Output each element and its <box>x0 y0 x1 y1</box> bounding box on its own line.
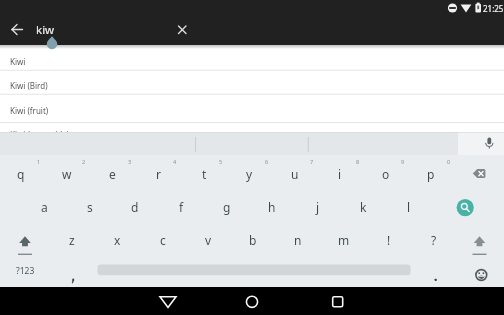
button[interactable] <box>458 132 504 155</box>
staticText: Kiwi (fruit) <box>10 105 49 116</box>
staticText: 21:25 <box>483 3 504 14</box>
staticText: 9 <box>401 158 405 165</box>
button[interactable]: ? <box>412 221 456 254</box>
staticText: 5 <box>219 158 223 165</box>
staticText: 7 <box>310 158 314 165</box>
staticText: y <box>246 166 253 182</box>
staticText: ?123 <box>16 265 35 277</box>
button[interactable]: l <box>387 188 431 221</box>
staticText: o <box>382 166 390 182</box>
button[interactable]: x <box>95 221 139 254</box>
button[interactable]: c <box>141 221 185 254</box>
staticText: w <box>62 166 72 182</box>
staticText: c <box>160 232 166 248</box>
button[interactable]: a <box>22 188 66 221</box>
button[interactable]: g <box>205 188 249 221</box>
button[interactable] <box>224 287 280 315</box>
staticText: b <box>249 232 257 248</box>
button[interactable]: w <box>45 155 89 188</box>
staticText: 4 <box>173 158 177 165</box>
button[interactable] <box>0 70 504 94</box>
button[interactable]: q <box>0 155 43 188</box>
staticText: r <box>156 166 161 182</box>
button[interactable]: f <box>159 188 203 221</box>
staticText: p <box>427 166 435 182</box>
button[interactable]: r <box>136 155 180 188</box>
staticText: 6 <box>265 158 269 165</box>
staticText: k <box>360 199 367 215</box>
staticText: m <box>338 232 350 248</box>
staticText: e <box>109 166 116 182</box>
button[interactable] <box>96 254 412 287</box>
button[interactable] <box>0 94 504 122</box>
staticText: ? <box>431 232 437 248</box>
button[interactable]: z <box>50 221 94 254</box>
staticText: i <box>338 166 342 182</box>
staticText: 2 <box>82 158 86 165</box>
staticText: a <box>41 199 48 215</box>
staticText: v <box>205 232 212 248</box>
staticText: 0 <box>447 158 451 165</box>
button[interactable] <box>456 221 502 254</box>
button[interactable]: t <box>182 155 226 188</box>
staticText: n <box>294 232 302 248</box>
button[interactable]: o <box>364 155 408 188</box>
button[interactable] <box>5 17 31 43</box>
button[interactable]: b <box>231 221 275 254</box>
button[interactable]: e <box>90 155 134 188</box>
staticText: z <box>69 232 75 248</box>
button[interactable]: y <box>227 155 271 188</box>
button[interactable]: p <box>409 155 453 188</box>
staticText: u <box>291 166 299 182</box>
button[interactable]: ! <box>367 221 411 254</box>
staticText: t <box>202 166 207 182</box>
staticText: l <box>407 199 411 215</box>
button[interactable]: ?123 <box>2 254 48 287</box>
staticText: kiw <box>36 22 55 38</box>
staticText: g <box>223 199 231 215</box>
button[interactable] <box>2 221 48 254</box>
button[interactable]: v <box>186 221 230 254</box>
button[interactable]: m <box>322 221 366 254</box>
button[interactable]: u <box>273 155 317 188</box>
staticText: x <box>114 232 121 248</box>
staticText: 1 <box>37 158 41 165</box>
staticText: Kiwi (vegetable) <box>10 129 70 132</box>
button[interactable] <box>48 254 92 287</box>
staticText: f <box>179 199 184 215</box>
button[interactable]: i <box>318 155 362 188</box>
button[interactable] <box>140 287 196 315</box>
button[interactable]: h <box>250 188 294 221</box>
button[interactable]: kiw <box>0 14 504 45</box>
button[interactable] <box>310 287 366 315</box>
button[interactable]: d <box>113 188 157 221</box>
button[interactable]: j <box>296 188 340 221</box>
button[interactable]: k <box>341 188 385 221</box>
button[interactable] <box>456 254 502 287</box>
button[interactable] <box>0 45 504 70</box>
staticText: Kiwi (Bird) <box>10 80 48 91</box>
staticText: q <box>17 166 25 182</box>
staticText: 8 <box>356 158 360 165</box>
staticText: j <box>316 199 320 215</box>
button[interactable]: n <box>276 221 320 254</box>
button[interactable] <box>456 155 502 188</box>
button[interactable] <box>169 17 195 43</box>
staticText: s <box>87 199 93 215</box>
staticText: h <box>268 199 276 215</box>
staticText: ! <box>387 232 391 248</box>
button[interactable] <box>444 188 488 226</box>
staticText: 3 <box>128 158 132 165</box>
staticText: d <box>131 199 139 215</box>
staticText: Kiwi <box>10 56 26 67</box>
button[interactable]: s <box>68 188 112 221</box>
button[interactable] <box>412 254 456 287</box>
